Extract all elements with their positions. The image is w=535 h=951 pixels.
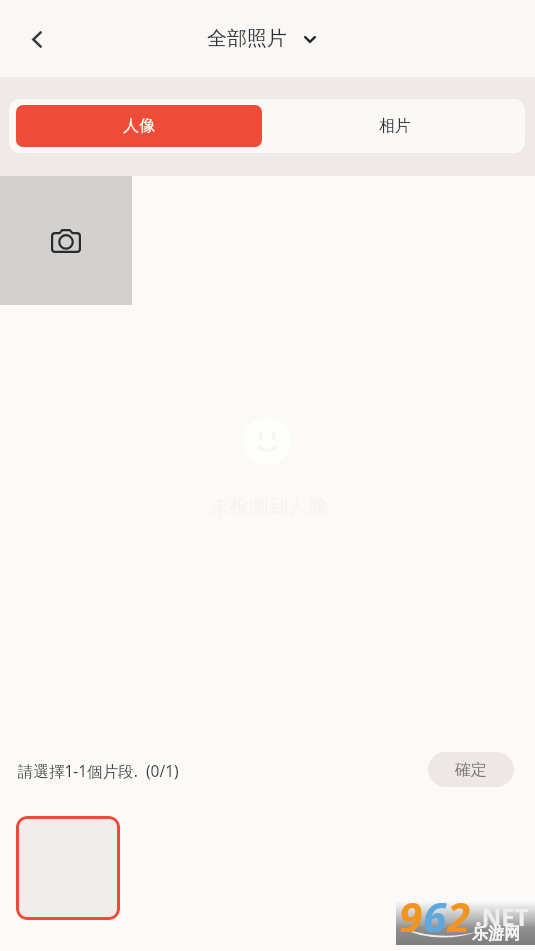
staticText: 2: [447, 888, 471, 932]
staticText: 乐游网: [472, 924, 520, 944]
staticText: 全部照片: [207, 26, 287, 51]
button[interactable]: 全部照片: [201, 18, 322, 59]
staticText: 請選擇1-1個片段. (0/1): [18, 760, 179, 781]
staticText: .NET: [475, 900, 529, 933]
staticText: 相片: [379, 116, 411, 136]
staticText: 6: [423, 888, 447, 932]
button[interactable]: Selected clip slot: [16, 816, 120, 920]
button[interactable]: Take photo: [0, 176, 132, 305]
button[interactable]: Back: [13, 15, 61, 63]
staticText: 確定: [455, 760, 487, 780]
staticText: 人像: [123, 116, 155, 136]
button[interactable]: 相片: [272, 105, 518, 147]
button[interactable]: 確定: [428, 752, 514, 787]
staticText: 9: [399, 888, 423, 932]
button[interactable]: 人像: [16, 105, 262, 147]
